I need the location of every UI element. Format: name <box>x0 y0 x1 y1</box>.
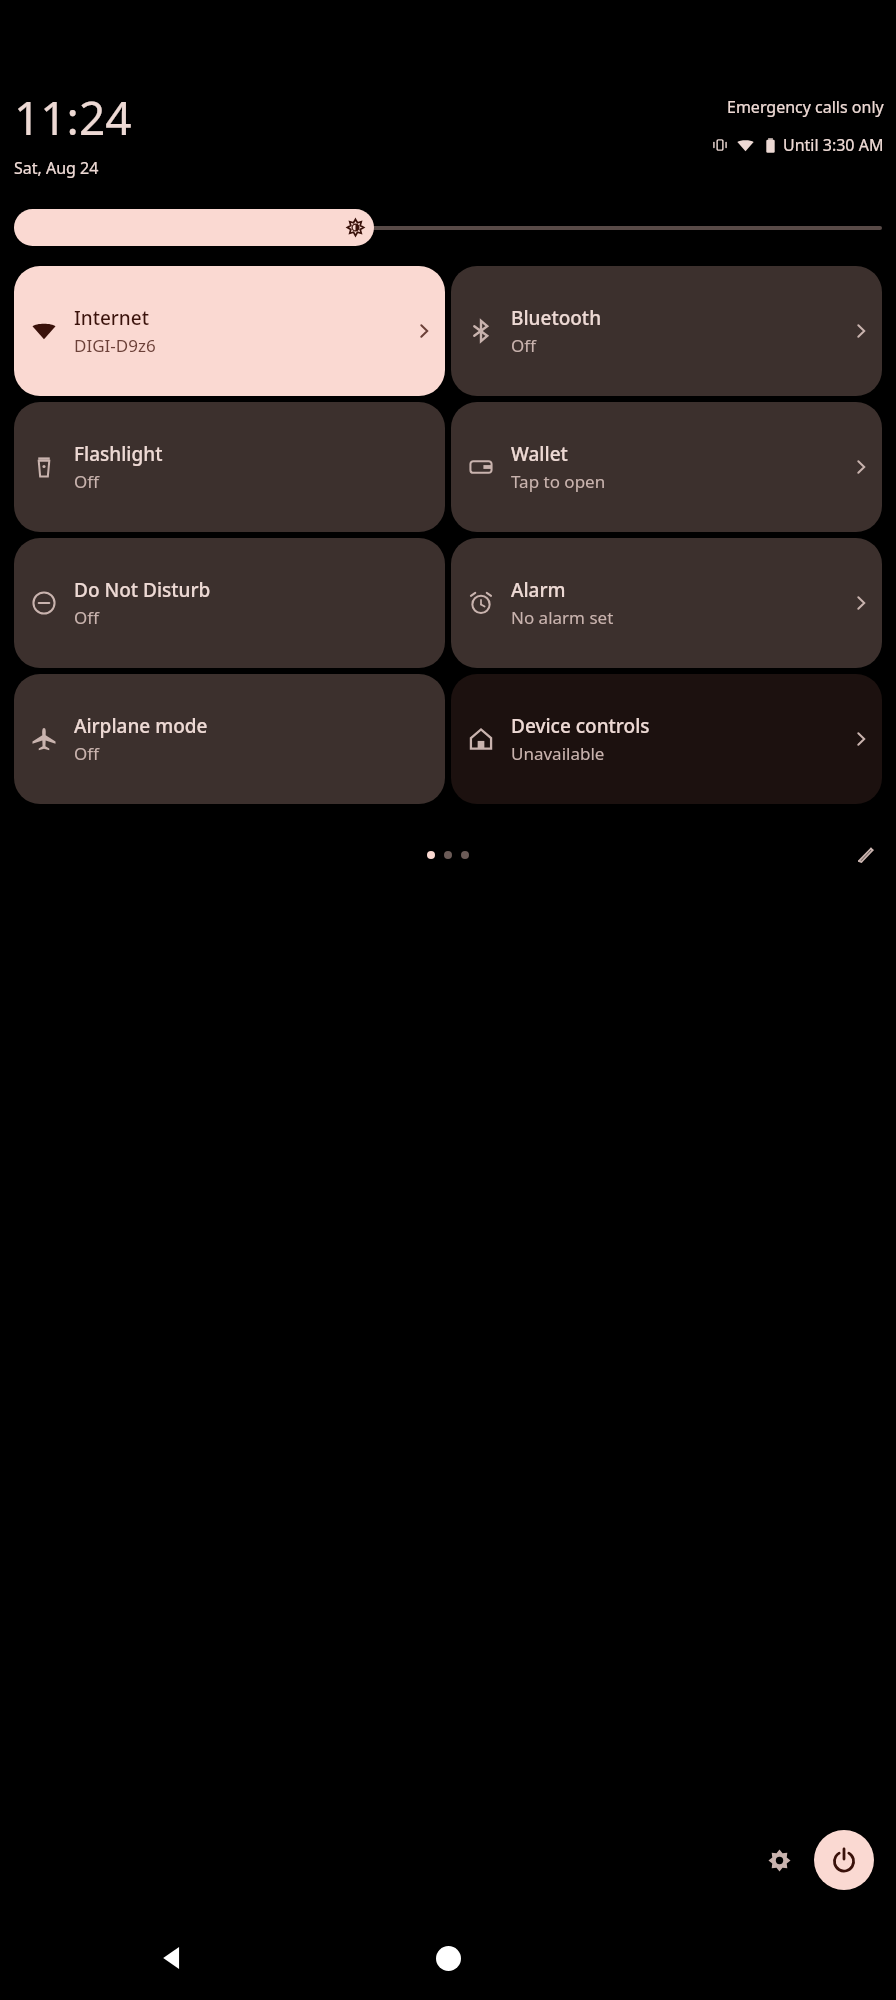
staticText: Flashlight <box>74 441 163 467</box>
button[interactable]: Device controls <box>451 674 882 804</box>
staticText: Internet <box>74 305 149 331</box>
button[interactable]: Settings <box>756 1837 802 1883</box>
staticText: Unavailable <box>511 742 605 765</box>
staticText: DIGI-D9z6 <box>74 334 156 357</box>
staticText: Off <box>74 606 99 629</box>
staticText: Airplane mode <box>74 713 208 739</box>
staticText: Do Not Disturb <box>74 577 211 603</box>
button[interactable]: Edit tiles <box>848 838 882 872</box>
staticText: Emergency calls only <box>727 96 884 118</box>
button[interactable]: Power <box>814 1830 874 1890</box>
staticText: Bluetooth <box>511 305 602 331</box>
staticText: Sat, Aug 24 <box>14 157 99 179</box>
staticText: Until 3:30 AM <box>783 134 884 156</box>
staticText: Off <box>74 470 99 493</box>
button[interactable]: Flashlight <box>14 402 445 532</box>
staticText: Off <box>511 334 536 357</box>
button[interactable]: Home <box>424 1934 472 1982</box>
button[interactable]: Airplane mode <box>14 674 445 804</box>
button[interactable]: Bluetooth <box>451 266 882 396</box>
staticText: 11:24 <box>14 86 132 149</box>
button[interactable]: Wallet <box>451 402 882 532</box>
staticText: Off <box>74 742 99 765</box>
button[interactable]: Back <box>148 1934 196 1982</box>
button[interactable]: Do Not Disturb <box>14 538 445 668</box>
staticText: Device controls <box>511 713 650 739</box>
button[interactable]: Brightness <box>14 209 882 246</box>
staticText: Wallet <box>511 441 568 467</box>
staticText: Tap to open <box>511 470 606 493</box>
button[interactable]: Internet <box>14 266 445 396</box>
staticText: No alarm set <box>511 606 614 629</box>
staticText: Alarm <box>511 577 566 603</box>
button[interactable]: Alarm <box>451 538 882 668</box>
